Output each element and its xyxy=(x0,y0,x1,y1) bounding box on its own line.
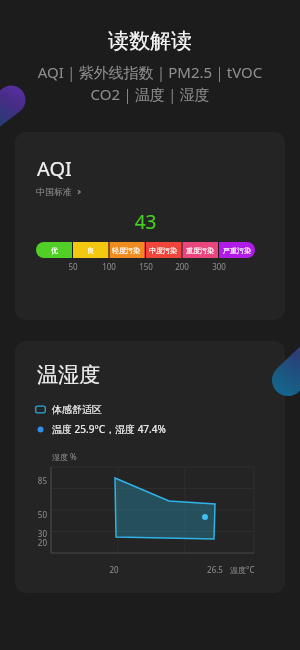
staticText: 50 xyxy=(27,509,47,520)
staticText: 20 xyxy=(27,537,47,548)
staticText: 重度污染 xyxy=(186,246,214,255)
staticText: 中度污染 xyxy=(149,246,177,255)
staticText: 50 xyxy=(68,261,78,272)
staticText: 轻度污染 xyxy=(112,246,140,255)
staticText: 读数解读 xyxy=(0,28,300,54)
staticText: AQI｜紫外线指数｜PM2.5｜tVOC xyxy=(0,62,300,82)
staticText: 30 xyxy=(27,528,47,539)
staticText: 温湿度 xyxy=(37,362,100,388)
staticText: 温度°C xyxy=(230,564,255,575)
button[interactable]: 中国标准 xyxy=(36,186,83,197)
staticText: 严重污染 xyxy=(223,246,251,255)
staticText: 43 xyxy=(36,209,255,235)
staticText: 20 xyxy=(94,564,134,575)
button[interactable]: 温湿度 xyxy=(15,341,285,593)
staticText: CO2｜温度｜湿度 xyxy=(0,84,300,104)
staticText: 优 xyxy=(51,246,58,255)
staticText: 湿度 % xyxy=(52,451,77,462)
staticText: 良 xyxy=(87,246,94,255)
staticText: 200 xyxy=(175,261,189,272)
staticText: 26.5 xyxy=(195,564,235,575)
staticText: 温度 25.9°C，湿度 47.4% xyxy=(52,422,166,436)
staticText: AQI xyxy=(37,155,72,182)
staticText: 100 xyxy=(102,261,116,272)
staticText: 150 xyxy=(139,261,153,272)
staticText: 体感舒适区 xyxy=(52,403,102,416)
staticText: 中国标准 xyxy=(36,186,72,197)
staticText: 85 xyxy=(27,475,47,486)
staticText: 300 xyxy=(212,261,226,272)
button[interactable]: AQI xyxy=(15,132,285,320)
